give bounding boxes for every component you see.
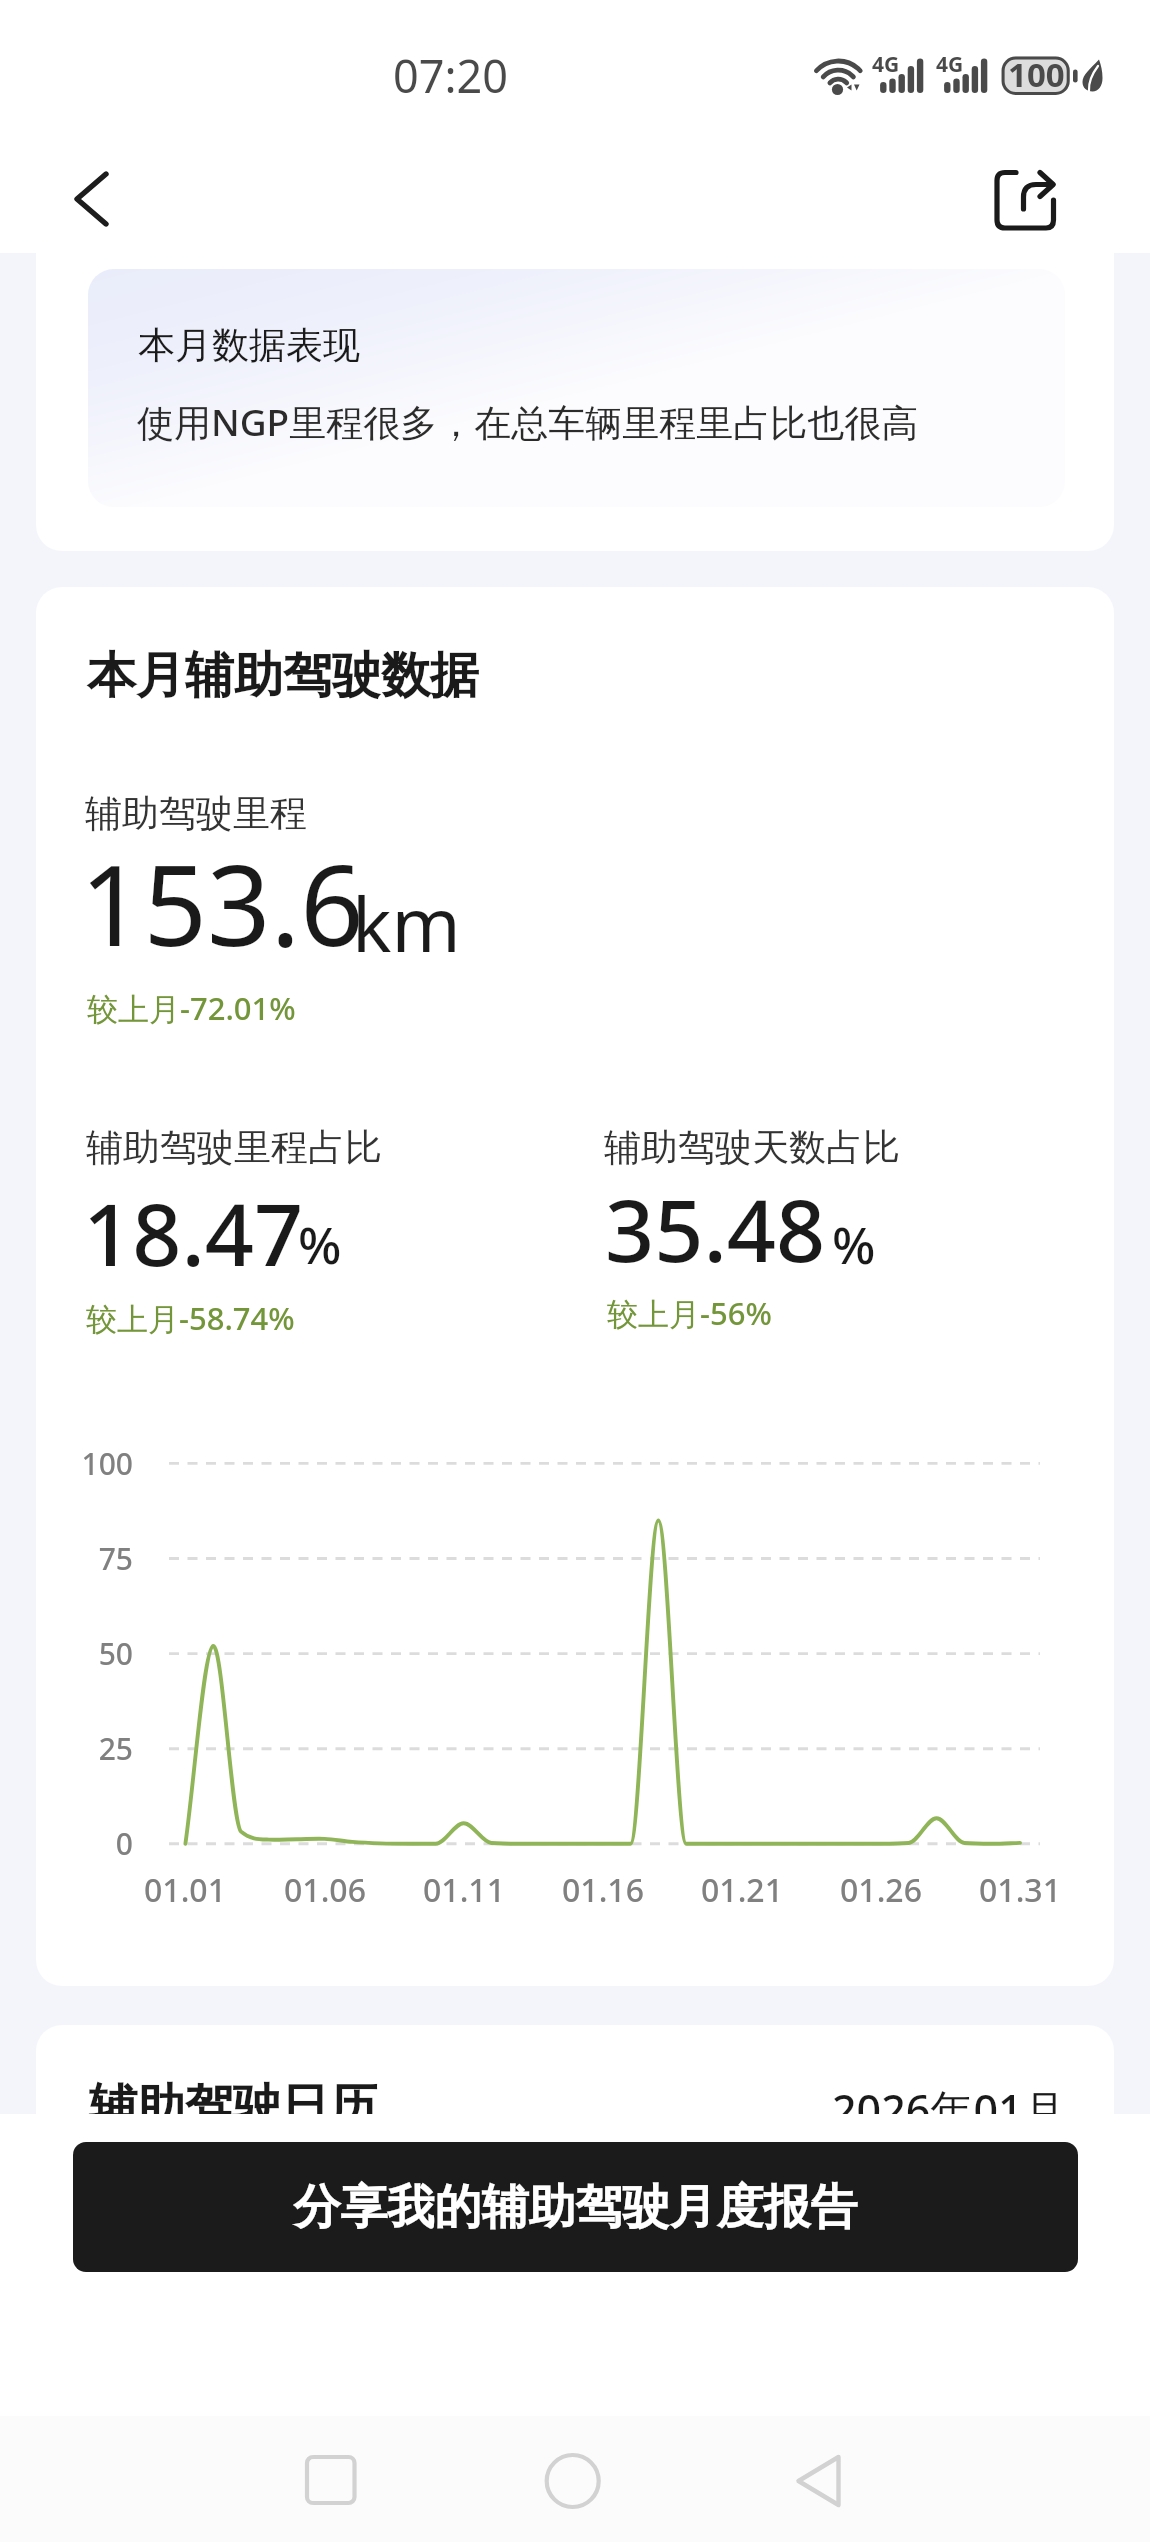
staticText: 2026年01月 [832,2080,1066,2139]
staticText: 4G [936,50,964,79]
staticText: % [832,1209,876,1278]
button[interactable]: Recents [264,2436,398,2526]
staticText: 18.47 [83,1174,304,1291]
staticText: 01.06 [225,1868,425,1912]
staticText: 较上月-56% [607,1292,772,1334]
staticText: 01.21 [642,1868,842,1912]
staticText: 07:20 [393,45,509,106]
button[interactable]: 辅助驾驶日历 2026年01月 [36,2025,1114,2114]
staticText: 4G [872,50,900,79]
staticText: 辅助驾驶里程占比 [86,1124,382,1171]
staticText: 本月数据表现 [138,322,360,369]
staticText: 01.16 [503,1868,703,1912]
staticText: 100 [0,1443,133,1484]
staticText: 辅助驾驶日历 [89,2077,377,2137]
staticText: 100 [1008,52,1065,97]
staticText: 25 [0,1728,133,1769]
staticText: 01.11 [364,1868,564,1912]
staticText: 0 [0,1823,133,1864]
staticText: km [352,873,461,974]
button[interactable]: 分享我的辅助驾驶月度报告 [73,2142,1078,2272]
staticText: 35.48 [605,1170,826,1287]
staticText: 01.31 [920,1868,1120,1912]
staticText: 分享我的辅助驾驶月度报告 [73,2178,1078,2237]
button[interactable]: Home [506,2436,640,2526]
staticText: 辅助驾驶天数占比 [604,1124,900,1171]
button[interactable]: Share [979,154,1073,246]
staticText: 75 [0,1538,133,1579]
staticText: 01.26 [781,1868,981,1912]
button[interactable]: Back [46,158,138,242]
staticText: 本月辅助驾驶数据 [87,645,479,707]
staticText: 50 [0,1633,133,1674]
staticText: 辅助驾驶里程 [85,790,307,837]
button[interactable]: Back [752,2436,886,2526]
staticText: 较上月-58.74% [86,1297,295,1339]
staticText: 153.6 [80,827,364,978]
staticText: 使用NGP里程很多，在总车辆里程里占比也很高 [137,396,919,447]
staticText: 较上月-72.01% [87,987,296,1029]
staticText: 01.01 [85,1868,285,1912]
staticText: % [298,1209,342,1278]
